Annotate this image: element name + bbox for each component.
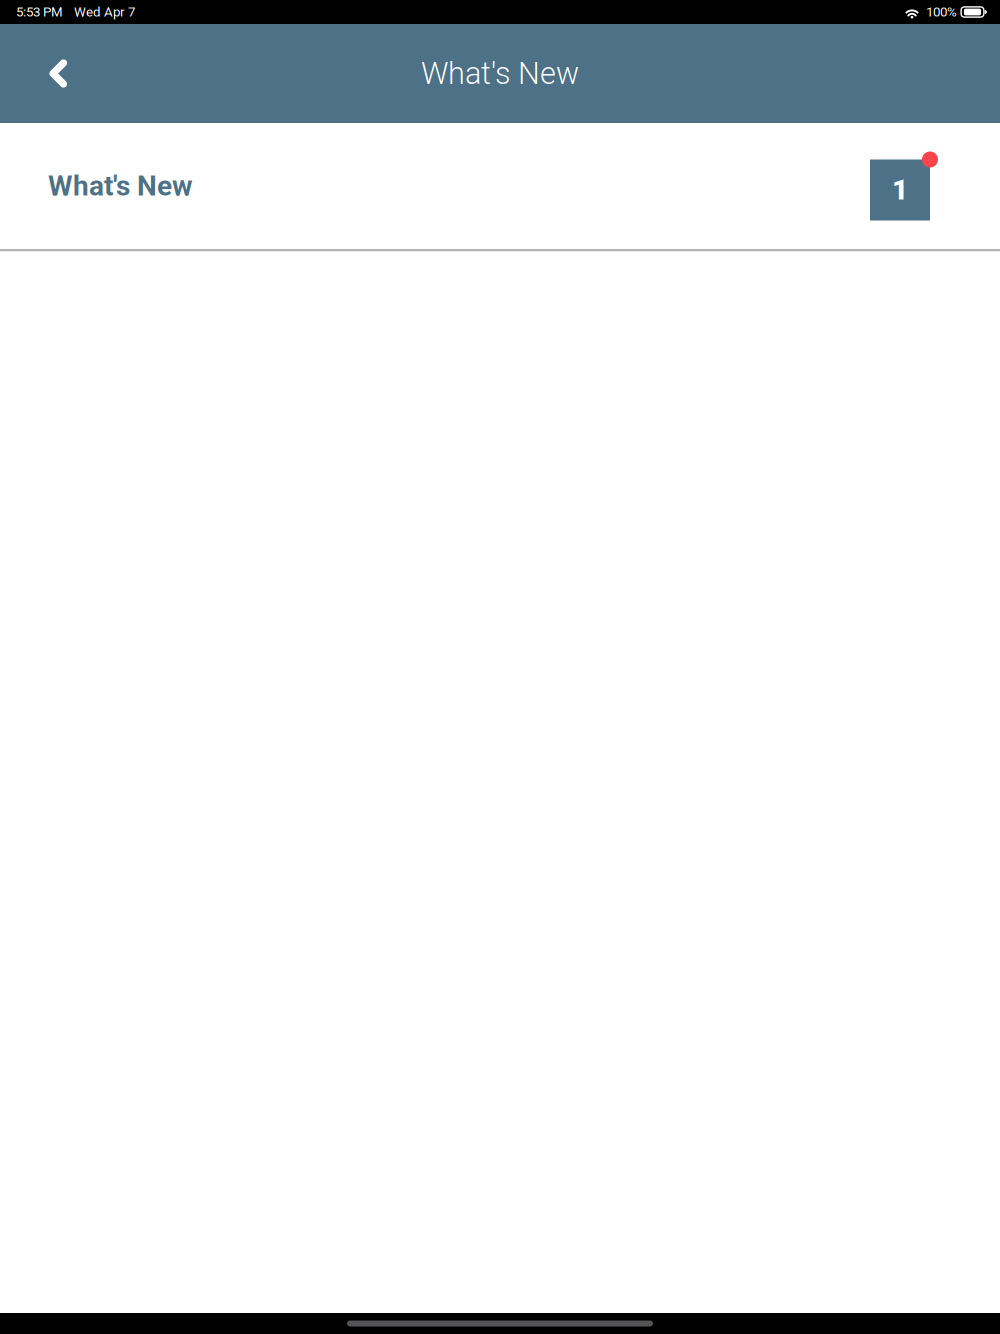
staticText: 5:53 PM [16,4,63,20]
staticText: What's New [48,170,193,202]
staticText: Wed Apr 7 [74,4,135,20]
button[interactable]: Back [0,24,92,123]
button[interactable]: What's New [0,123,1000,249]
staticText: 1 [892,174,908,206]
staticText: 100% [926,4,957,20]
staticText: What's New [421,55,579,91]
